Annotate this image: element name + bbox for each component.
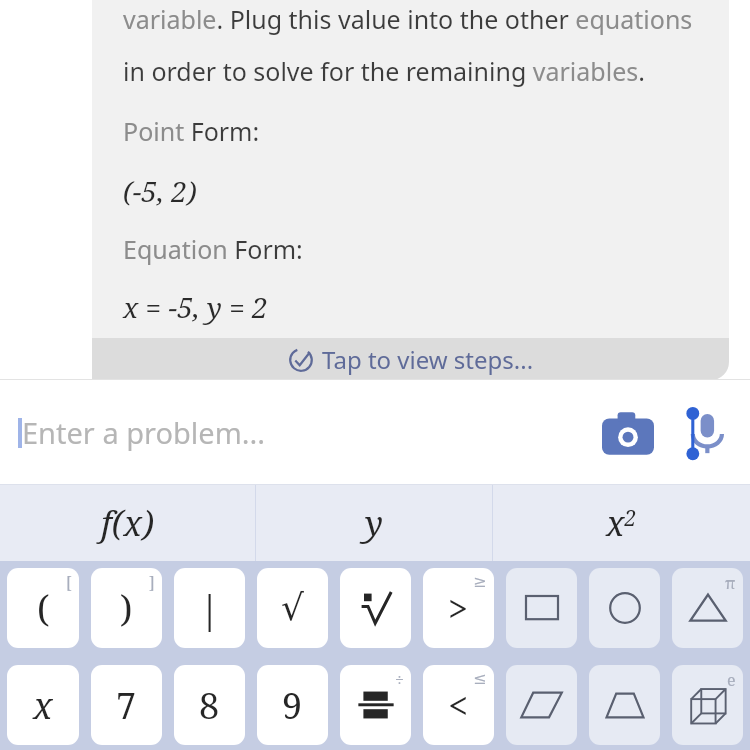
staticText: Equation Form: — [123, 232, 303, 266]
staticText: f(x) — [101, 500, 154, 546]
staticText: (−5, 2) — [123, 172, 197, 210]
button[interactable]: Camera — [596, 401, 660, 465]
button[interactable]: ( — [7, 568, 79, 648]
button[interactable]: 8 — [174, 665, 245, 745]
button[interactable]: > — [423, 568, 494, 648]
staticText: y — [365, 500, 383, 546]
button[interactable]: | — [174, 568, 245, 648]
staticText: < — [448, 681, 469, 730]
button[interactable]: circ — [589, 568, 660, 648]
button[interactable]: trap — [589, 665, 660, 745]
button[interactable]: root — [340, 568, 411, 648]
button[interactable]: tri — [672, 568, 743, 648]
staticText: 8 — [199, 681, 220, 730]
staticText: ≤ — [473, 669, 487, 688]
staticText: Point Form: — [123, 114, 260, 148]
button[interactable]: f(x) — [0, 485, 255, 561]
button[interactable]: y — [256, 485, 492, 561]
button[interactable]: Tap to view steps... — [92, 338, 729, 380]
staticText: π — [725, 572, 736, 594]
staticText: ( — [37, 584, 50, 633]
button[interactable]: para — [506, 665, 577, 745]
button[interactable]: Voice input — [672, 401, 736, 465]
staticText: 7 — [116, 681, 137, 730]
staticText: 9 — [282, 681, 303, 730]
staticText: √ — [281, 587, 304, 629]
button[interactable]: ) — [91, 568, 162, 648]
button[interactable]: < — [423, 665, 494, 745]
staticText: > — [448, 584, 469, 633]
staticText: ) — [120, 584, 133, 633]
button[interactable]: frac — [340, 665, 411, 745]
staticText: x — [33, 681, 53, 730]
staticText: variable. Plug this value into the other… — [123, 2, 693, 36]
staticText: Tap to view steps... — [322, 343, 534, 376]
button[interactable]: 7 — [91, 665, 162, 745]
staticText: [ — [66, 572, 72, 594]
staticText: | — [199, 582, 221, 634]
staticText: x2 — [606, 500, 637, 546]
staticText: x = −5, y = 2 — [123, 288, 268, 326]
button[interactable]: sq — [506, 568, 577, 648]
button[interactable]: √ — [257, 568, 328, 648]
button[interactable]: x2 — [493, 485, 750, 561]
staticText: ≥ — [473, 572, 487, 591]
staticText: e — [727, 669, 736, 691]
button[interactable]: x — [7, 665, 79, 745]
button[interactable]: 9 — [257, 665, 328, 745]
staticText: ] — [149, 572, 155, 594]
staticText: ÷ — [395, 669, 404, 691]
staticText: in order to solve for the remaining vari… — [123, 54, 645, 88]
staticText: Enter a problem... — [22, 413, 266, 452]
button[interactable]: cube — [672, 665, 743, 745]
